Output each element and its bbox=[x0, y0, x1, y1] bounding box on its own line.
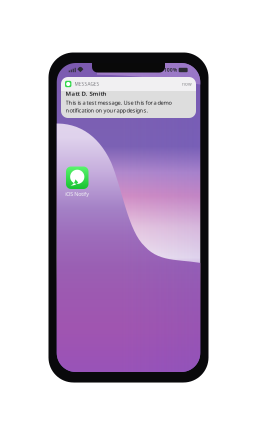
staticText: This is a test message. Use this for a d… bbox=[65, 99, 171, 114]
button[interactable]: MESSAGES bbox=[61, 77, 196, 118]
staticText: MESSAGES bbox=[75, 81, 100, 87]
staticText: 100% bbox=[164, 67, 177, 73]
staticText: iOS Notify bbox=[65, 190, 89, 198]
staticText: Matt D. Smith bbox=[65, 89, 106, 98]
staticText: now bbox=[182, 81, 192, 87]
button[interactable]: iOS Notify bbox=[65, 166, 89, 198]
